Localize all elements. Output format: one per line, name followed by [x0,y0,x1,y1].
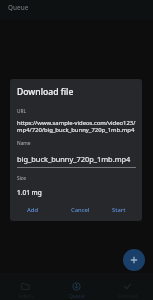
staticText: Start [112,206,126,214]
staticText: Queue [69,293,85,300]
staticText: https://www.sample-videos.com/video123/m… [17,119,136,134]
staticText: Videos [18,293,34,300]
button[interactable]: Start [110,204,128,216]
staticText: Finished [118,293,138,300]
button[interactable]: Cancel [69,204,92,216]
button[interactable]: Queue [51,273,102,300]
staticText: Queue [8,3,29,12]
staticText: Download file [17,86,74,98]
button[interactable]: Add [25,204,40,216]
staticText: URL [17,108,27,115]
staticText: 1.01 mg [17,188,42,197]
staticText: Add [27,206,38,214]
staticText: Cancel [71,206,90,214]
staticText: big_buck_bunny_720p_1mb.mp4 [17,154,131,164]
button[interactable]: Add download [123,249,145,271]
staticText: Name [17,140,31,147]
staticText: Size [17,175,26,182]
